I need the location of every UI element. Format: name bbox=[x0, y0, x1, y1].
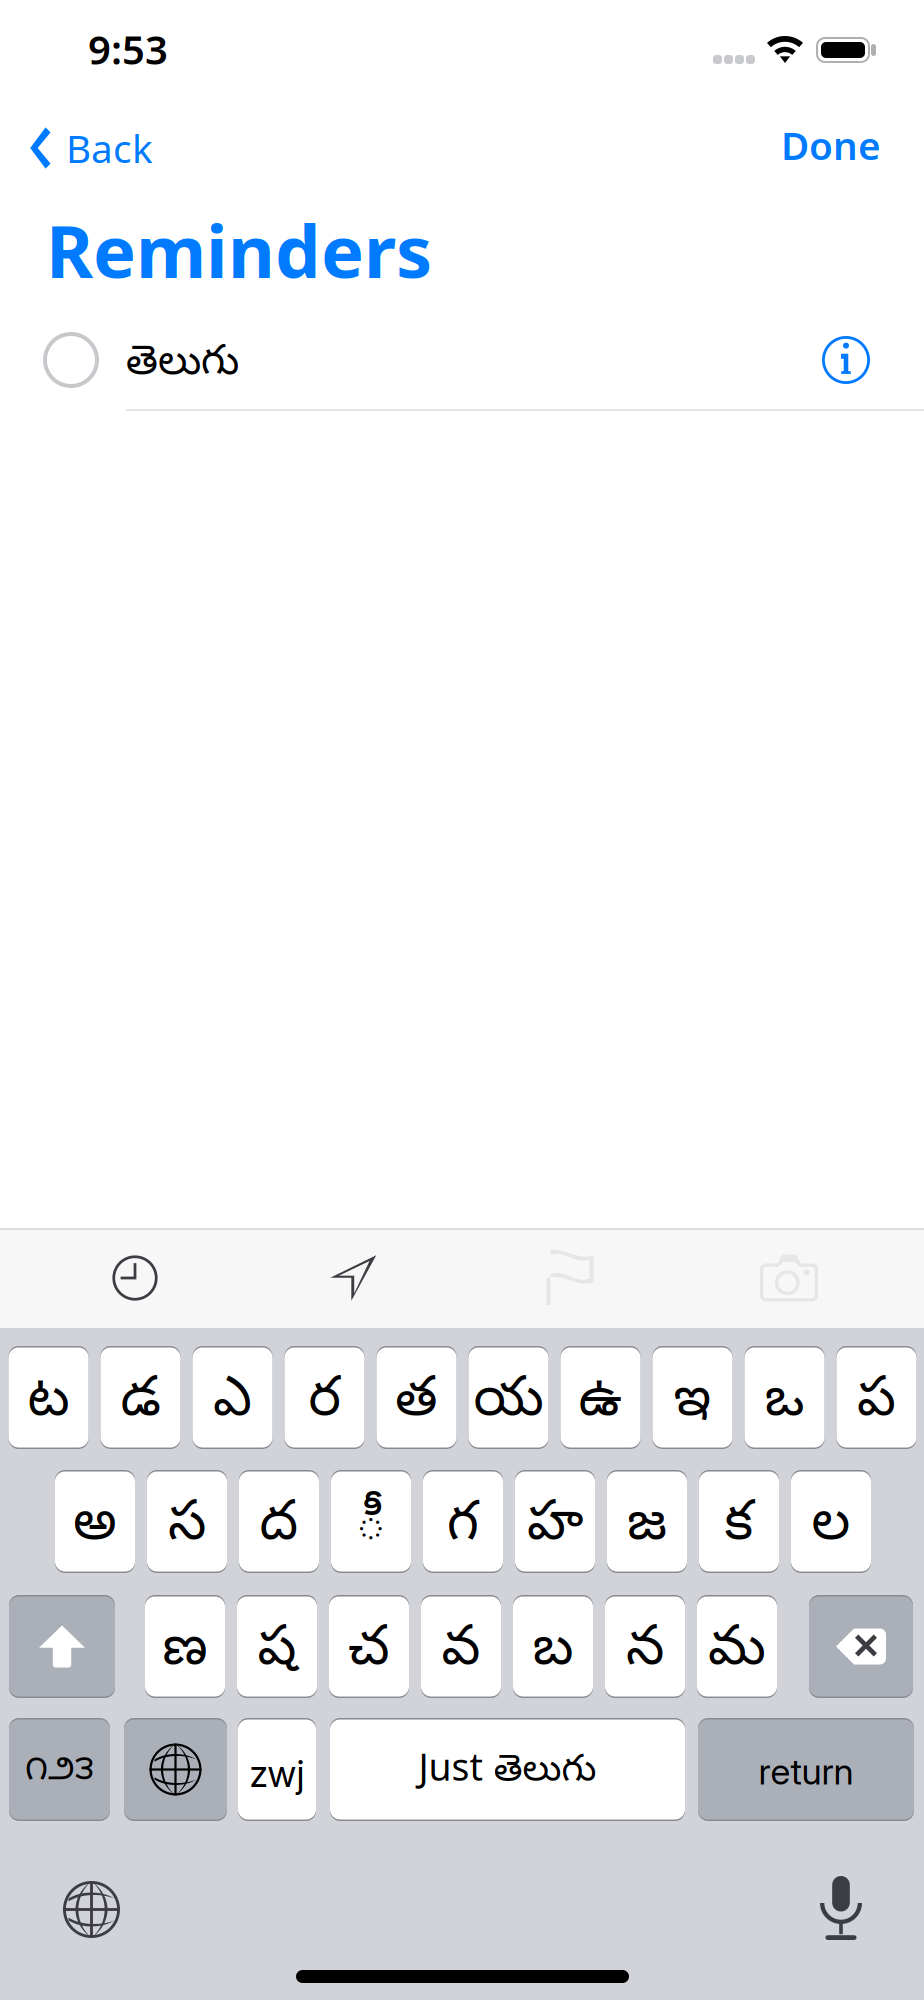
staticText: ణ bbox=[162, 1616, 207, 1690]
button[interactable]: Done bbox=[727, 106, 924, 184]
button[interactable]: హ bbox=[515, 1470, 595, 1573]
staticText: Just తెలుగు bbox=[418, 1748, 596, 1799]
button[interactable]: Delete bbox=[809, 1595, 913, 1698]
button[interactable]: Shift bbox=[9, 1595, 115, 1698]
staticText: ఇ bbox=[673, 1367, 711, 1441]
button[interactable]: ఇ bbox=[652, 1346, 732, 1449]
button[interactable]: return bbox=[698, 1718, 914, 1821]
staticText: త bbox=[395, 1367, 438, 1441]
button[interactable]: డ bbox=[100, 1346, 180, 1449]
staticText: ఉ bbox=[578, 1367, 622, 1441]
staticText: ర bbox=[308, 1367, 340, 1441]
staticText: ఒ bbox=[764, 1367, 804, 1441]
staticText: వ bbox=[441, 1616, 480, 1690]
button[interactable]: Flag bbox=[461, 1228, 679, 1328]
button[interactable]: ణ bbox=[145, 1595, 225, 1698]
button[interactable]: ీ bbox=[331, 1470, 411, 1573]
button[interactable]: ఒ bbox=[744, 1346, 824, 1449]
staticText: మ bbox=[708, 1616, 766, 1690]
button[interactable]: య bbox=[468, 1346, 548, 1449]
button[interactable]: Switch keyboard bbox=[55, 1873, 128, 1946]
button[interactable]: బ bbox=[513, 1595, 593, 1698]
staticText: న bbox=[626, 1616, 664, 1690]
button[interactable]: ట bbox=[8, 1346, 88, 1449]
staticText: Reminders bbox=[46, 202, 432, 298]
staticText: 9:53 bbox=[88, 22, 168, 75]
button[interactable]: Camera bbox=[680, 1228, 898, 1328]
staticText: ష bbox=[257, 1616, 296, 1690]
staticText: Done bbox=[781, 119, 881, 171]
button[interactable]: న bbox=[605, 1595, 685, 1698]
staticText: గ bbox=[447, 1491, 479, 1565]
staticText: య bbox=[473, 1367, 543, 1441]
staticText: హ bbox=[527, 1491, 583, 1565]
button[interactable]: గ bbox=[423, 1470, 503, 1573]
button[interactable]: ష bbox=[237, 1595, 317, 1698]
staticText: ౧౨౩ bbox=[25, 1749, 94, 1796]
button[interactable]: మ bbox=[697, 1595, 777, 1698]
button[interactable]: త bbox=[376, 1346, 456, 1449]
staticText: తెలుగు bbox=[126, 338, 239, 394]
button[interactable]: Back bbox=[10, 109, 210, 187]
button[interactable]: స bbox=[147, 1470, 227, 1573]
staticText: అ bbox=[73, 1491, 117, 1565]
staticText: ద bbox=[259, 1491, 298, 1565]
staticText: return bbox=[758, 1750, 853, 1793]
button[interactable]: ఎ bbox=[192, 1346, 272, 1449]
staticText: క bbox=[724, 1491, 753, 1565]
button[interactable]: Next keyboard bbox=[124, 1718, 227, 1821]
staticText: ఎ bbox=[213, 1367, 252, 1441]
button[interactable]: Recents bbox=[26, 1228, 244, 1328]
staticText: ట bbox=[27, 1367, 69, 1441]
button[interactable]: ల bbox=[791, 1470, 871, 1573]
button[interactable]: అ bbox=[55, 1470, 135, 1573]
staticText: బ bbox=[532, 1616, 573, 1690]
button[interactable]: Dictate bbox=[810, 1866, 872, 1950]
button[interactable]: ఉ bbox=[560, 1346, 640, 1449]
staticText: Back bbox=[66, 122, 153, 174]
staticText: స bbox=[168, 1491, 206, 1565]
button[interactable]: క bbox=[699, 1470, 779, 1573]
button[interactable]: చ bbox=[329, 1595, 409, 1698]
button[interactable]: Location bbox=[244, 1228, 462, 1328]
button[interactable]: జ bbox=[607, 1470, 687, 1573]
staticText: ప bbox=[857, 1367, 896, 1441]
button[interactable]: ౧౨౩ bbox=[9, 1718, 110, 1821]
staticText: చ bbox=[348, 1616, 390, 1690]
button[interactable]: zwj bbox=[238, 1718, 316, 1821]
staticText: ల bbox=[811, 1491, 850, 1565]
button[interactable]: తెలుగు bbox=[0, 318, 924, 402]
staticText: డ bbox=[120, 1367, 160, 1441]
button[interactable]: Just తెలుగు bbox=[330, 1718, 685, 1821]
button[interactable]: వ bbox=[421, 1595, 501, 1698]
staticText: జ bbox=[627, 1491, 667, 1565]
button[interactable]: ర bbox=[284, 1346, 364, 1449]
staticText: ీ bbox=[355, 1491, 387, 1565]
button[interactable]: ద bbox=[239, 1470, 319, 1573]
button[interactable]: ప bbox=[836, 1346, 916, 1449]
staticText: zwj bbox=[249, 1751, 304, 1796]
